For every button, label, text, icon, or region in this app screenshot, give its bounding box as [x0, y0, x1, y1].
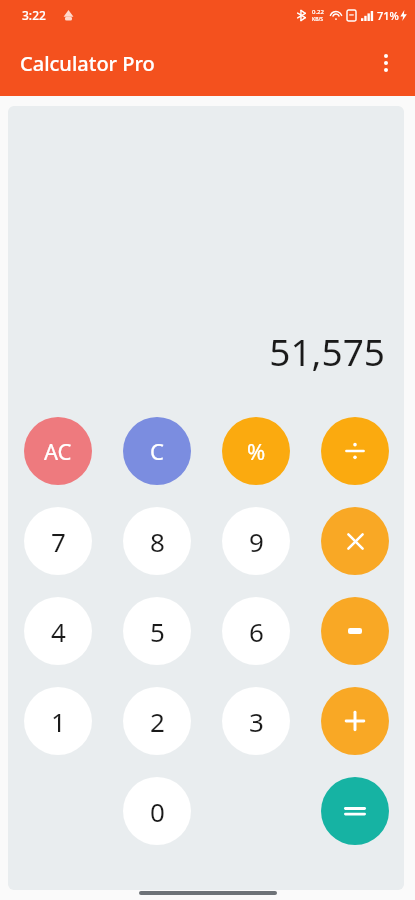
button[interactable]: Equals: [321, 777, 389, 845]
button[interactable]: %: [222, 417, 290, 485]
button[interactable]: 6: [222, 597, 290, 665]
staticText: KB/S: [312, 16, 324, 23]
button[interactable]: 7: [24, 507, 92, 575]
staticText: 71%: [377, 8, 399, 23]
staticText: 4: [51, 614, 66, 649]
button[interactable]: 0: [123, 777, 191, 845]
button[interactable]: More options: [365, 42, 407, 84]
staticText: %: [247, 436, 266, 466]
button[interactable]: Plus: [321, 687, 389, 755]
button[interactable]: 4: [24, 597, 92, 665]
staticText: 8: [150, 524, 165, 559]
button[interactable]: AC: [24, 417, 92, 485]
button[interactable]: 1: [24, 687, 92, 755]
button[interactable]: 2: [123, 687, 191, 755]
staticText: 9: [249, 524, 264, 559]
staticText: 51,575: [269, 326, 385, 376]
staticText: 0: [150, 794, 165, 829]
staticText: C: [150, 436, 164, 466]
button[interactable]: 9: [222, 507, 290, 575]
button[interactable]: Minus: [321, 597, 389, 665]
button[interactable]: C: [123, 417, 191, 485]
button[interactable]: Divide: [321, 417, 389, 485]
staticText: Calculator Pro: [20, 50, 155, 77]
button[interactable]: 5: [123, 597, 191, 665]
staticText: 1: [51, 704, 66, 739]
staticText: 3: [249, 704, 264, 739]
staticText: AC: [44, 436, 72, 466]
staticText: 5: [150, 614, 165, 649]
button[interactable]: 8: [123, 507, 191, 575]
staticText: 6: [249, 614, 264, 649]
staticText: 3:22: [22, 7, 46, 23]
button[interactable]: Multiply: [321, 507, 389, 575]
staticText: 0.22: [312, 8, 324, 16]
staticText: 2: [150, 704, 165, 739]
staticText: 7: [51, 524, 66, 559]
button[interactable]: 3: [222, 687, 290, 755]
